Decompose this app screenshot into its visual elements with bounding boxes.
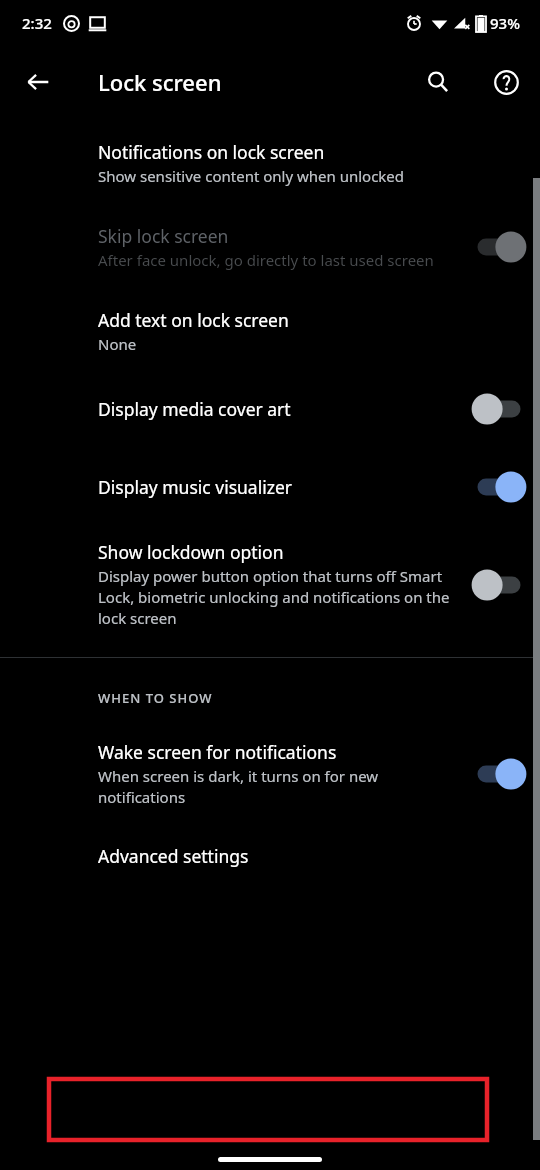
button[interactable]: Notifications on lock screen xyxy=(0,140,540,186)
button[interactable]: Advanced settings xyxy=(0,844,540,868)
button[interactable]: Add text on lock screen xyxy=(0,308,540,354)
button[interactable]: Display media cover art xyxy=(0,392,540,426)
staticText: When screen is dark, it turns on for new… xyxy=(98,766,464,808)
staticText: Wake screen for notifications xyxy=(98,740,337,764)
button[interactable]: On xyxy=(472,230,526,264)
button[interactable]: Skip lock screen xyxy=(0,224,540,270)
button[interactable]: Search xyxy=(414,58,462,106)
staticText: Display power button option that turns o… xyxy=(98,566,464,629)
staticText: 2:32 xyxy=(22,13,52,33)
button[interactable]: Display music visualizer xyxy=(0,470,540,504)
staticText: Show lockdown option xyxy=(98,540,284,564)
button[interactable]: On xyxy=(472,470,526,504)
staticText: Display media cover art xyxy=(98,397,291,421)
button[interactable]: Show lockdown option xyxy=(0,540,540,629)
staticText: Display music visualizer xyxy=(98,475,293,499)
staticText: 93% xyxy=(490,13,520,33)
staticText: After face unlock, go directly to last u… xyxy=(98,250,434,270)
staticText: WHEN TO SHOW xyxy=(98,689,213,707)
staticText: Notifications on lock screen xyxy=(98,140,325,164)
button[interactable]: Wake screen for notifications xyxy=(0,740,540,808)
button[interactable]: Off xyxy=(472,392,526,426)
button[interactable]: Help xyxy=(482,58,530,106)
button[interactable]: On xyxy=(472,757,526,791)
staticText: Lock screen xyxy=(98,67,222,97)
staticText: Add text on lock screen xyxy=(98,308,289,332)
button[interactable]: Back xyxy=(14,58,62,106)
staticText: Skip lock screen xyxy=(98,224,229,248)
staticText: Show sensitive content only when unlocke… xyxy=(98,166,405,186)
staticText: Advanced settings xyxy=(98,844,249,868)
button[interactable]: Off xyxy=(472,568,526,602)
staticText: None xyxy=(98,334,137,354)
